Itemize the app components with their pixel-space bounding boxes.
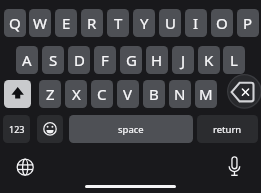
staticText: S — [49, 50, 58, 70]
staticText: E — [62, 13, 71, 33]
staticText: K — [204, 50, 214, 70]
staticText: T — [114, 13, 123, 33]
staticText: space — [118, 123, 144, 136]
button[interactable] — [4, 80, 31, 108]
button[interactable]: G — [120, 46, 142, 74]
button[interactable]: Z — [39, 80, 61, 108]
staticText: H — [151, 50, 163, 70]
staticText: J — [181, 50, 186, 70]
staticText: A — [22, 50, 32, 70]
button[interactable]: space — [69, 115, 193, 143]
staticText: C — [97, 84, 107, 104]
staticText: Y — [140, 13, 149, 33]
staticText: U — [165, 13, 176, 33]
button[interactable]: 123 — [3, 115, 30, 143]
staticText: O — [216, 13, 228, 33]
staticText: V — [123, 84, 133, 104]
button[interactable]: Y — [133, 9, 155, 37]
staticText: L — [230, 50, 238, 70]
button[interactable]: X — [65, 80, 87, 108]
button[interactable] — [226, 154, 243, 178]
staticText: F — [101, 50, 109, 70]
button[interactable]: E — [55, 9, 77, 37]
button[interactable] — [37, 115, 63, 143]
button[interactable]: O — [211, 9, 233, 37]
staticText: X — [72, 84, 81, 104]
button[interactable]: A — [16, 46, 38, 74]
button[interactable]: F — [94, 46, 116, 74]
button[interactable]: T — [107, 9, 129, 37]
button[interactable]: return — [197, 115, 258, 143]
staticText: R — [87, 13, 97, 33]
button[interactable]: U — [159, 9, 181, 37]
button[interactable]: H — [146, 46, 168, 74]
button[interactable]: I — [185, 9, 207, 37]
button[interactable] — [16, 158, 34, 176]
staticText: Q — [9, 13, 21, 33]
staticText: M — [199, 84, 213, 104]
staticText: W — [33, 13, 47, 33]
button[interactable]: R — [81, 9, 103, 37]
staticText: 123 — [9, 123, 25, 135]
button[interactable]: V — [117, 80, 139, 108]
button[interactable]: W — [29, 9, 51, 37]
button[interactable]: P — [237, 9, 259, 37]
button[interactable]: Q — [4, 9, 26, 37]
staticText: N — [174, 84, 186, 104]
button[interactable]: L — [223, 46, 245, 74]
button[interactable]: D — [68, 46, 90, 74]
button[interactable]: B — [143, 80, 165, 108]
button[interactable]: N — [169, 80, 191, 108]
staticText: return — [213, 123, 242, 136]
staticText: Z — [46, 84, 55, 104]
button[interactable] — [227, 74, 261, 109]
button[interactable]: S — [42, 46, 64, 74]
staticText: B — [149, 84, 159, 104]
staticText: D — [74, 50, 85, 70]
button[interactable]: C — [91, 80, 113, 108]
staticText: I — [193, 13, 199, 33]
staticText: P — [243, 13, 253, 33]
button[interactable]: J — [172, 46, 194, 74]
button[interactable]: K — [198, 46, 220, 74]
button[interactable]: M — [195, 80, 217, 108]
staticText: G — [126, 50, 137, 70]
